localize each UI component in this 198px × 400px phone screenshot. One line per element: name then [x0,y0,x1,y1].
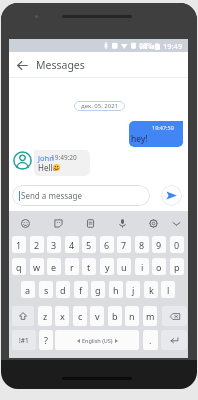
button[interactable]: l [161,281,175,298]
button[interactable]: n [125,306,139,326]
staticText: 7 [121,239,127,251]
button[interactable]: h [109,281,123,298]
staticText: John [38,153,54,163]
button[interactable]: 8 [135,236,149,253]
staticText: y [105,261,110,273]
button[interactable]: v [90,306,104,326]
staticText: l [167,284,170,296]
button[interactable]: 2 [30,236,44,253]
staticText: 68% [139,41,153,51]
button[interactable]: !#1 [12,330,36,350]
button[interactable]: 7 [117,236,131,253]
button[interactable]: Hide keyboard [168,215,184,231]
other: John avatar [13,151,32,170]
staticText: 3 [51,239,57,251]
button[interactable]: u [117,258,131,275]
staticText: t [87,261,91,273]
button[interactable]: Send a message [12,185,150,206]
staticText: d [60,284,66,296]
staticText: ? [44,334,48,346]
button[interactable]: 19:47:59 [129,121,183,147]
staticText: i [141,261,144,273]
button[interactable]: m [143,306,157,326]
staticText: hey! [131,133,148,145]
staticText: u [121,261,127,273]
button[interactable]: John [34,150,90,176]
button[interactable]: y [100,258,114,275]
staticText: дек. 05, 2021 [81,102,119,110]
button[interactable]: z [38,306,52,326]
staticText: 19:47:59 [152,124,174,131]
staticText: Hello [38,162,58,173]
staticText: m [146,310,155,322]
button[interactable]: p [170,258,184,275]
staticText: x [60,310,65,322]
button[interactable]: w [30,258,44,275]
button[interactable]: 0 [170,236,184,253]
staticText: a [25,284,31,296]
staticText: . [149,334,152,346]
staticText: f [79,284,83,296]
staticText: k [149,284,154,296]
staticText: b [112,310,118,322]
staticText: h [113,284,119,296]
staticText: 8 [139,239,145,251]
staticText: 0 [174,239,180,251]
staticText: 19:49:20 [51,153,77,162]
button[interactable]: d [56,281,70,298]
button[interactable]: i [135,258,149,275]
button[interactable]: Stickers [50,215,66,231]
button[interactable]: 4 [65,236,79,253]
staticText: w [33,261,41,273]
button[interactable]: 1 [12,236,26,253]
button[interactable]: ? [39,330,53,350]
staticText: Send a message [21,190,82,201]
button[interactable]: 6 [100,236,114,253]
button[interactable]: 3 [47,236,61,253]
button[interactable]: s [39,281,53,298]
button[interactable]: Emoji [17,215,33,231]
button[interactable]: Keyboard settings [145,215,161,231]
staticText: j [132,284,135,296]
button[interactable]: Enter [161,330,187,350]
staticText: c [78,310,83,322]
button[interactable]: 5 [82,236,96,253]
button[interactable]: o [152,258,166,275]
button[interactable]: . [143,330,158,350]
button[interactable]: e [47,258,61,275]
staticText: 5 [86,239,92,251]
button[interactable]: b [108,306,122,326]
staticText: Messages [36,58,85,72]
staticText: s [44,284,49,296]
button[interactable]: Voice input [114,215,130,231]
staticText: 6 [104,239,110,251]
button[interactable]: j [126,281,140,298]
staticText: n [129,310,135,322]
button[interactable]: Back [13,56,31,74]
staticText: e [51,261,57,273]
button[interactable]: q [12,258,26,275]
staticText: !#1 [19,336,29,345]
staticText: p [174,261,180,273]
button[interactable]: g [91,281,105,298]
staticText: z [43,310,48,322]
button[interactable]: x [55,306,69,326]
button[interactable]: r [65,258,79,275]
staticText: v [95,310,100,322]
button[interactable]: Shift [12,306,34,326]
staticText: 9 [156,239,162,251]
staticText: 1 [16,239,22,251]
staticText: 19:49 [163,41,183,51]
button[interactable]: 9 [152,236,166,253]
staticText: 2 [34,239,40,251]
button[interactable]: f [74,281,88,298]
button[interactable]: t [82,258,96,275]
staticText: r [70,261,74,273]
button[interactable]: c [73,306,87,326]
button[interactable]: Backspace [162,306,187,326]
button[interactable]: Clipboard [82,215,98,231]
button[interactable]: Send [161,185,182,206]
button[interactable]: k [144,281,158,298]
button[interactable]: a [21,281,35,298]
button[interactable]: Space [55,330,139,350]
